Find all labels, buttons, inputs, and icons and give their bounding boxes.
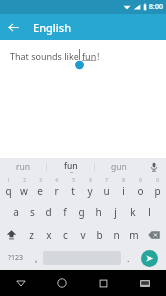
button[interactable]: h — [90, 200, 107, 223]
staticText: ?123 — [8, 253, 24, 263]
staticText: English — [33, 20, 72, 35]
button[interactable]: 6 — [81, 175, 98, 200]
staticText: 8 — [122, 177, 125, 183]
button[interactable]: 2 — [16, 175, 32, 200]
button[interactable]: s — [24, 200, 40, 223]
staticText: 7 — [105, 177, 108, 183]
button[interactable]: gun — [95, 158, 142, 175]
staticText: t — [71, 184, 75, 198]
button[interactable]: ?123 — [3, 248, 29, 268]
staticText: n — [113, 228, 120, 242]
button[interactable]: Backspace — [142, 223, 166, 246]
button[interactable]: 7 — [98, 175, 115, 200]
staticText: w — [20, 184, 28, 198]
button[interactable]: c — [57, 223, 74, 246]
staticText: 9 — [139, 177, 142, 183]
button[interactable]: fun — [47, 158, 94, 175]
button[interactable]: 4 — [48, 175, 64, 200]
staticText: gun — [111, 161, 127, 173]
staticText: 5 — [72, 177, 75, 183]
button[interactable]: x — [40, 223, 57, 246]
button[interactable]: m — [125, 223, 142, 246]
staticText: v — [80, 228, 86, 242]
staticText: 4 — [55, 177, 58, 183]
staticText: h — [95, 205, 102, 219]
staticText: 3 — [39, 177, 42, 183]
button[interactable]: a — [8, 200, 24, 223]
staticText: 0 — [156, 177, 159, 183]
staticText: k — [130, 205, 136, 219]
staticText: 2 — [23, 177, 26, 183]
button[interactable]: Home — [41, 270, 82, 296]
button[interactable]: v — [74, 223, 91, 246]
button[interactable]: Back — [0, 14, 26, 40]
staticText: j — [114, 205, 117, 219]
staticText: m — [129, 228, 139, 242]
staticText: fun — [64, 160, 78, 172]
button[interactable]: run — [0, 158, 46, 175]
staticText: d — [45, 205, 52, 219]
staticText: That sounds like — [10, 50, 82, 62]
staticText: y — [87, 184, 93, 198]
staticText: z — [29, 228, 34, 242]
staticText: r — [54, 184, 59, 198]
staticText: run — [16, 161, 31, 173]
staticText: o — [137, 184, 144, 198]
staticText: , — [35, 252, 38, 264]
staticText: a — [13, 205, 19, 219]
button[interactable]: Shift — [0, 223, 23, 246]
button[interactable]: g — [73, 200, 90, 223]
button[interactable]: 5 — [64, 175, 81, 200]
staticText: i — [122, 184, 125, 198]
staticText: s — [30, 205, 35, 219]
button[interactable]: Send — [141, 250, 158, 267]
button[interactable]: n — [108, 223, 125, 246]
staticText: 8:00 — [149, 2, 163, 12]
staticText: f — [63, 205, 67, 219]
button[interactable]: Back — [0, 270, 41, 296]
button[interactable]: 3 — [32, 175, 48, 200]
staticText: . — [127, 252, 130, 264]
button[interactable]: z — [23, 223, 40, 246]
button[interactable]: j — [107, 200, 124, 223]
button[interactable]: 1 — [0, 175, 16, 200]
button[interactable]: Recents — [82, 270, 124, 296]
staticText: u — [103, 184, 110, 198]
button[interactable]: l — [141, 200, 158, 223]
staticText: q — [5, 184, 12, 198]
staticText: p — [154, 184, 161, 198]
staticText: e — [37, 184, 43, 198]
staticText: fun — [82, 50, 97, 62]
button[interactable]: k — [124, 200, 141, 223]
staticText: ! — [97, 50, 100, 62]
staticText: l — [148, 205, 151, 219]
button[interactable]: 9 — [132, 175, 149, 200]
button[interactable]: f — [56, 200, 73, 223]
staticText: b — [96, 228, 103, 242]
button[interactable]: 8 — [115, 175, 132, 200]
staticText: 6 — [89, 177, 92, 183]
button[interactable]: 0 — [149, 175, 166, 200]
button[interactable]: d — [40, 200, 56, 223]
staticText: g — [78, 205, 85, 219]
staticText: x — [46, 228, 52, 242]
staticText: 1 — [7, 177, 10, 183]
button[interactable]: . — [121, 248, 135, 268]
staticText: c — [63, 228, 68, 242]
button[interactable]: b — [91, 223, 108, 246]
button[interactable]: Switch keyboard — [124, 270, 166, 296]
button[interactable]: , — [29, 248, 43, 268]
button[interactable]: Voice input — [142, 158, 166, 175]
